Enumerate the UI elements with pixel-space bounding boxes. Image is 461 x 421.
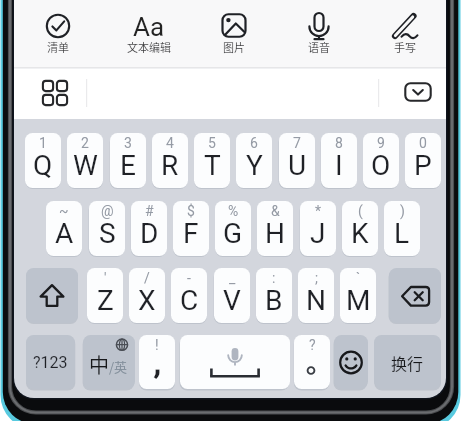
- button[interactable]: 1: [25, 133, 61, 188]
- button[interactable]: [18, 4, 98, 64]
- staticText: 3: [124, 135, 132, 151]
- staticText: N: [306, 284, 326, 317]
- staticText: !: [155, 337, 159, 353]
- staticText: A: [55, 217, 74, 250]
- button[interactable]: 7: [279, 133, 315, 188]
- button[interactable]: *: [300, 201, 336, 256]
- button[interactable]: 4: [152, 133, 188, 188]
- staticText: X: [138, 284, 156, 317]
- button[interactable]: [334, 335, 368, 389]
- staticText: 1: [39, 135, 47, 151]
- staticText: 9: [377, 135, 385, 151]
- staticText: G: [223, 217, 243, 250]
- staticText: _: [229, 270, 236, 286]
- staticText: U: [288, 149, 307, 182]
- staticText: Aa: [133, 12, 165, 42]
- staticText: @: [101, 203, 114, 219]
- button[interactable]: 5: [194, 133, 230, 188]
- button[interactable]: 换行: [374, 335, 441, 389]
- staticText: (: [358, 203, 363, 219]
- button[interactable]: 6: [236, 133, 272, 188]
- button[interactable]: -: [171, 268, 207, 323]
- staticText: W: [73, 149, 98, 182]
- staticText: 4: [166, 135, 174, 151]
- staticText: ?: [309, 337, 316, 353]
- staticText: Q: [33, 149, 53, 182]
- button[interactable]: [194, 4, 274, 64]
- button[interactable]: 9: [363, 133, 399, 188]
- button[interactable]: [365, 4, 445, 64]
- button[interactable]: [109, 4, 189, 64]
- staticText: :: [272, 270, 276, 286]
- button[interactable]: &: [257, 201, 293, 256]
- button[interactable]: #: [131, 201, 167, 256]
- staticText: O: [371, 149, 391, 182]
- staticText: `: [356, 270, 361, 286]
- button[interactable]: %: [215, 201, 251, 256]
- button[interactable]: $: [173, 201, 209, 256]
- staticText: 2: [81, 135, 89, 151]
- button[interactable]: [26, 268, 78, 323]
- button[interactable]: ?123: [26, 335, 75, 389]
- staticText: 0: [419, 135, 427, 151]
- button[interactable]: 3: [110, 133, 146, 188]
- staticText: ~: [59, 203, 69, 219]
- staticText: *: [315, 203, 322, 219]
- staticText: 图片: [223, 39, 245, 55]
- staticText: $: [187, 203, 195, 219]
- staticText: K: [351, 217, 369, 250]
- button[interactable]: 2: [67, 133, 103, 188]
- staticText: %: [228, 203, 239, 219]
- button[interactable]: [401, 79, 435, 105]
- staticText: D: [140, 217, 159, 250]
- staticText: -: [187, 270, 191, 286]
- button[interactable]: [180, 335, 290, 389]
- staticText: 手写: [394, 39, 416, 55]
- button[interactable]: ': [87, 268, 123, 323]
- staticText: Y: [246, 149, 263, 182]
- staticText: T: [204, 149, 221, 182]
- staticText: &: [271, 203, 280, 219]
- staticText: /英: [109, 357, 128, 376]
- staticText: P: [414, 149, 432, 182]
- staticText: C: [180, 284, 199, 317]
- button[interactable]: ?: [294, 335, 330, 389]
- button[interactable]: ~: [46, 201, 82, 256]
- button[interactable]: !: [139, 335, 175, 389]
- staticText: ?123: [33, 353, 68, 372]
- staticText: 语音: [308, 39, 330, 55]
- staticText: 7: [293, 135, 301, 151]
- staticText: 8: [335, 135, 343, 151]
- staticText: 清单: [47, 39, 69, 55]
- staticText: ;: [315, 270, 318, 286]
- staticText: M: [346, 284, 371, 317]
- button[interactable]: @: [89, 201, 125, 256]
- button[interactable]: 8: [321, 133, 357, 188]
- button[interactable]: ;: [298, 268, 334, 323]
- button[interactable]: 0: [405, 133, 441, 188]
- button[interactable]: (: [342, 201, 378, 256]
- button[interactable]: `: [340, 268, 376, 323]
- staticText: H: [265, 217, 285, 250]
- button[interactable]: :: [256, 268, 292, 323]
- staticText: F: [183, 217, 199, 250]
- button[interactable]: 中: [83, 335, 135, 389]
- button[interactable]: _: [214, 268, 250, 323]
- staticText: R: [161, 149, 179, 182]
- staticText: 文本编辑: [127, 39, 171, 55]
- button[interactable]: [36, 74, 73, 111]
- staticText: V: [223, 284, 241, 317]
- button[interactable]: ): [384, 201, 420, 256]
- staticText: B: [265, 284, 283, 317]
- button[interactable]: /: [129, 268, 165, 323]
- staticText: L: [394, 217, 410, 250]
- button[interactable]: [389, 268, 441, 323]
- button[interactable]: [279, 4, 359, 64]
- staticText: I: [335, 149, 343, 182]
- staticText: 换行: [391, 351, 424, 374]
- staticText: S: [99, 217, 116, 250]
- staticText: E: [120, 149, 136, 182]
- staticText: ,: [154, 343, 161, 382]
- staticText: #: [145, 203, 154, 219]
- staticText: ': [104, 270, 107, 286]
